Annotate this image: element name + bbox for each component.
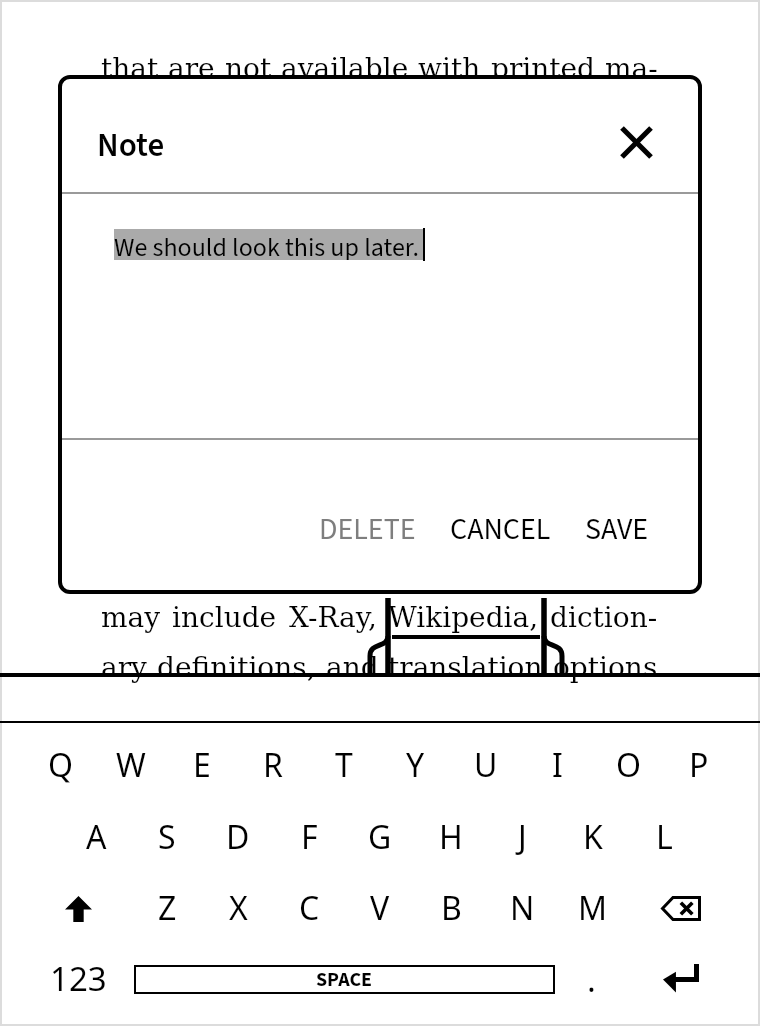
button[interactable]: Selection end handle (516, 598, 572, 675)
button[interactable]: SAVE (568, 494, 666, 565)
staticText: G (368, 815, 392, 859)
staticText: C (299, 886, 320, 930)
button[interactable]: Selection start handle (360, 598, 416, 675)
button[interactable]: P (666, 737, 732, 793)
staticText: . (587, 957, 596, 1002)
staticText: and (326, 651, 379, 684)
staticText: We should look this up later. (114, 229, 419, 260)
staticText: options (553, 651, 658, 684)
staticText: H (439, 815, 463, 859)
staticText: not (225, 52, 272, 85)
staticText: available (281, 52, 409, 85)
button[interactable]: A (63, 809, 129, 865)
staticText: are (168, 52, 215, 85)
staticText: with (418, 52, 481, 85)
staticText: that (101, 52, 159, 85)
button[interactable]: D (205, 809, 271, 865)
staticText: Y (406, 743, 425, 787)
staticText: V (370, 886, 390, 930)
button[interactable]: M (560, 880, 626, 936)
staticText: Z (158, 886, 177, 930)
button[interactable]: R (240, 737, 306, 793)
button[interactable]: X (205, 880, 271, 936)
staticText: ma- (605, 52, 658, 85)
button[interactable]: J (489, 809, 555, 865)
staticText: Note (97, 122, 165, 169)
button[interactable]: B (418, 880, 484, 936)
button[interactable]: F (276, 809, 342, 865)
staticText: definitions, (157, 651, 316, 684)
staticText: A (86, 815, 107, 859)
button[interactable]: G (347, 809, 413, 865)
staticText: D (226, 815, 250, 859)
staticText: W (116, 743, 146, 787)
button[interactable]: T (311, 737, 377, 793)
staticText: O (616, 743, 641, 787)
button[interactable]: . (566, 954, 616, 1004)
button[interactable]: S (134, 809, 200, 865)
button[interactable]: L (631, 809, 697, 865)
staticText: diction- (550, 601, 658, 634)
button[interactable]: W (98, 737, 164, 793)
button[interactable]: H (418, 809, 484, 865)
staticText: F (301, 815, 318, 859)
staticText: E (193, 743, 211, 787)
staticText: T (335, 743, 353, 787)
button[interactable]: Shift (48, 879, 108, 939)
button[interactable]: Z (134, 880, 200, 936)
staticText: DELETE (319, 508, 416, 551)
button[interactable]: V (347, 880, 413, 936)
button[interactable]: O (595, 737, 661, 793)
button[interactable]: Y (382, 737, 448, 793)
button[interactable]: DELETE (302, 494, 433, 565)
staticText: SPACE (316, 966, 373, 994)
staticText: Q (48, 743, 73, 787)
button[interactable]: Enter (651, 954, 711, 1004)
staticText: I (552, 743, 563, 787)
staticText: translation (388, 651, 543, 684)
staticText: P (689, 743, 709, 787)
staticText: U (474, 743, 498, 787)
button[interactable]: Q (27, 737, 93, 793)
button[interactable]: I (524, 737, 590, 793)
button[interactable]: N (489, 880, 555, 936)
staticText: R (263, 743, 283, 787)
staticText: printed (491, 52, 596, 85)
staticText: include (172, 601, 277, 634)
staticText: K (583, 815, 603, 859)
staticText: CANCEL (450, 508, 551, 551)
button[interactable]: C (276, 880, 342, 936)
staticText: S (158, 815, 176, 859)
staticText: may (101, 601, 161, 634)
button[interactable]: SPACE (134, 965, 555, 994)
staticText: L (656, 815, 673, 859)
staticText: Wikipedia, (388, 601, 539, 634)
button[interactable]: Close (610, 116, 662, 168)
button[interactable]: K (560, 809, 626, 865)
button[interactable]: 123 (43, 953, 113, 1003)
staticText: X-Ray, (289, 601, 377, 634)
staticText: 123 (50, 956, 107, 1001)
button[interactable]: Backspace (646, 880, 716, 936)
staticText: X (229, 886, 248, 930)
staticText: M (578, 886, 608, 930)
button[interactable]: CANCEL (433, 494, 568, 565)
staticText: ary (101, 651, 147, 684)
staticText: B (441, 886, 462, 930)
staticText: SAVE (585, 508, 649, 551)
button[interactable]: E (169, 737, 235, 793)
staticText: J (518, 815, 527, 859)
staticText: N (510, 886, 535, 930)
button[interactable]: U (453, 737, 519, 793)
